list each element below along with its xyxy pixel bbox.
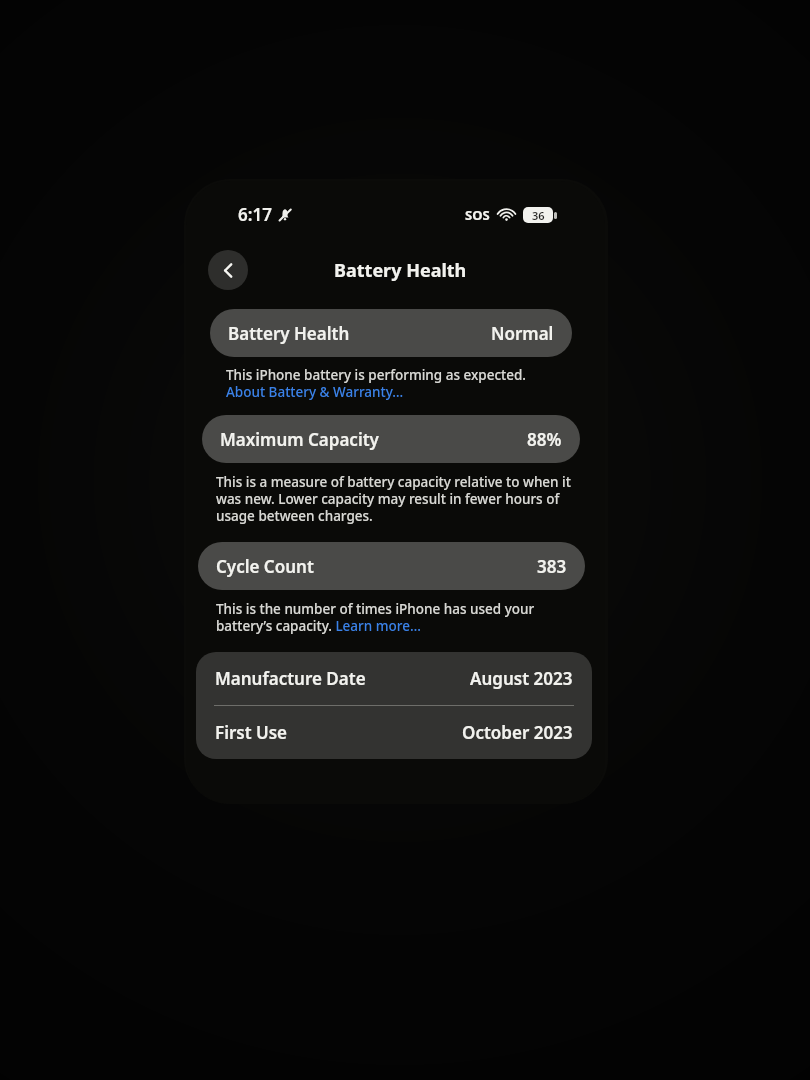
button[interactable]: Cycle Count xyxy=(198,542,585,590)
staticText: Manufacture Date xyxy=(215,667,366,690)
staticText: This is a measure of battery capacity re… xyxy=(216,473,577,525)
button[interactable]: First Use xyxy=(196,706,592,759)
staticText: SOS xyxy=(465,206,490,224)
staticText: Cycle Count xyxy=(216,555,314,578)
staticText: 36 xyxy=(532,208,545,223)
button[interactable]: Maximum Capacity xyxy=(202,415,580,463)
staticText: August 2023 xyxy=(470,667,573,690)
button[interactable]: This is the number of times iPhone has u… xyxy=(216,600,559,635)
button[interactable]: Manufacture Date xyxy=(196,652,592,705)
staticText: 6:17 xyxy=(238,203,272,226)
staticText: Normal xyxy=(491,322,554,345)
button[interactable]: Battery Health xyxy=(210,309,572,357)
staticText: October 2023 xyxy=(462,721,573,744)
staticText: 88% xyxy=(527,428,562,451)
button[interactable]: This iPhone battery is performing as exp… xyxy=(226,366,553,401)
button[interactable]: Back xyxy=(208,250,248,290)
staticText: Battery Health xyxy=(228,322,350,345)
staticText: Battery Health xyxy=(334,258,467,283)
staticText: First Use xyxy=(215,721,288,744)
staticText: Maximum Capacity xyxy=(220,428,379,451)
staticText: 383 xyxy=(537,555,567,578)
